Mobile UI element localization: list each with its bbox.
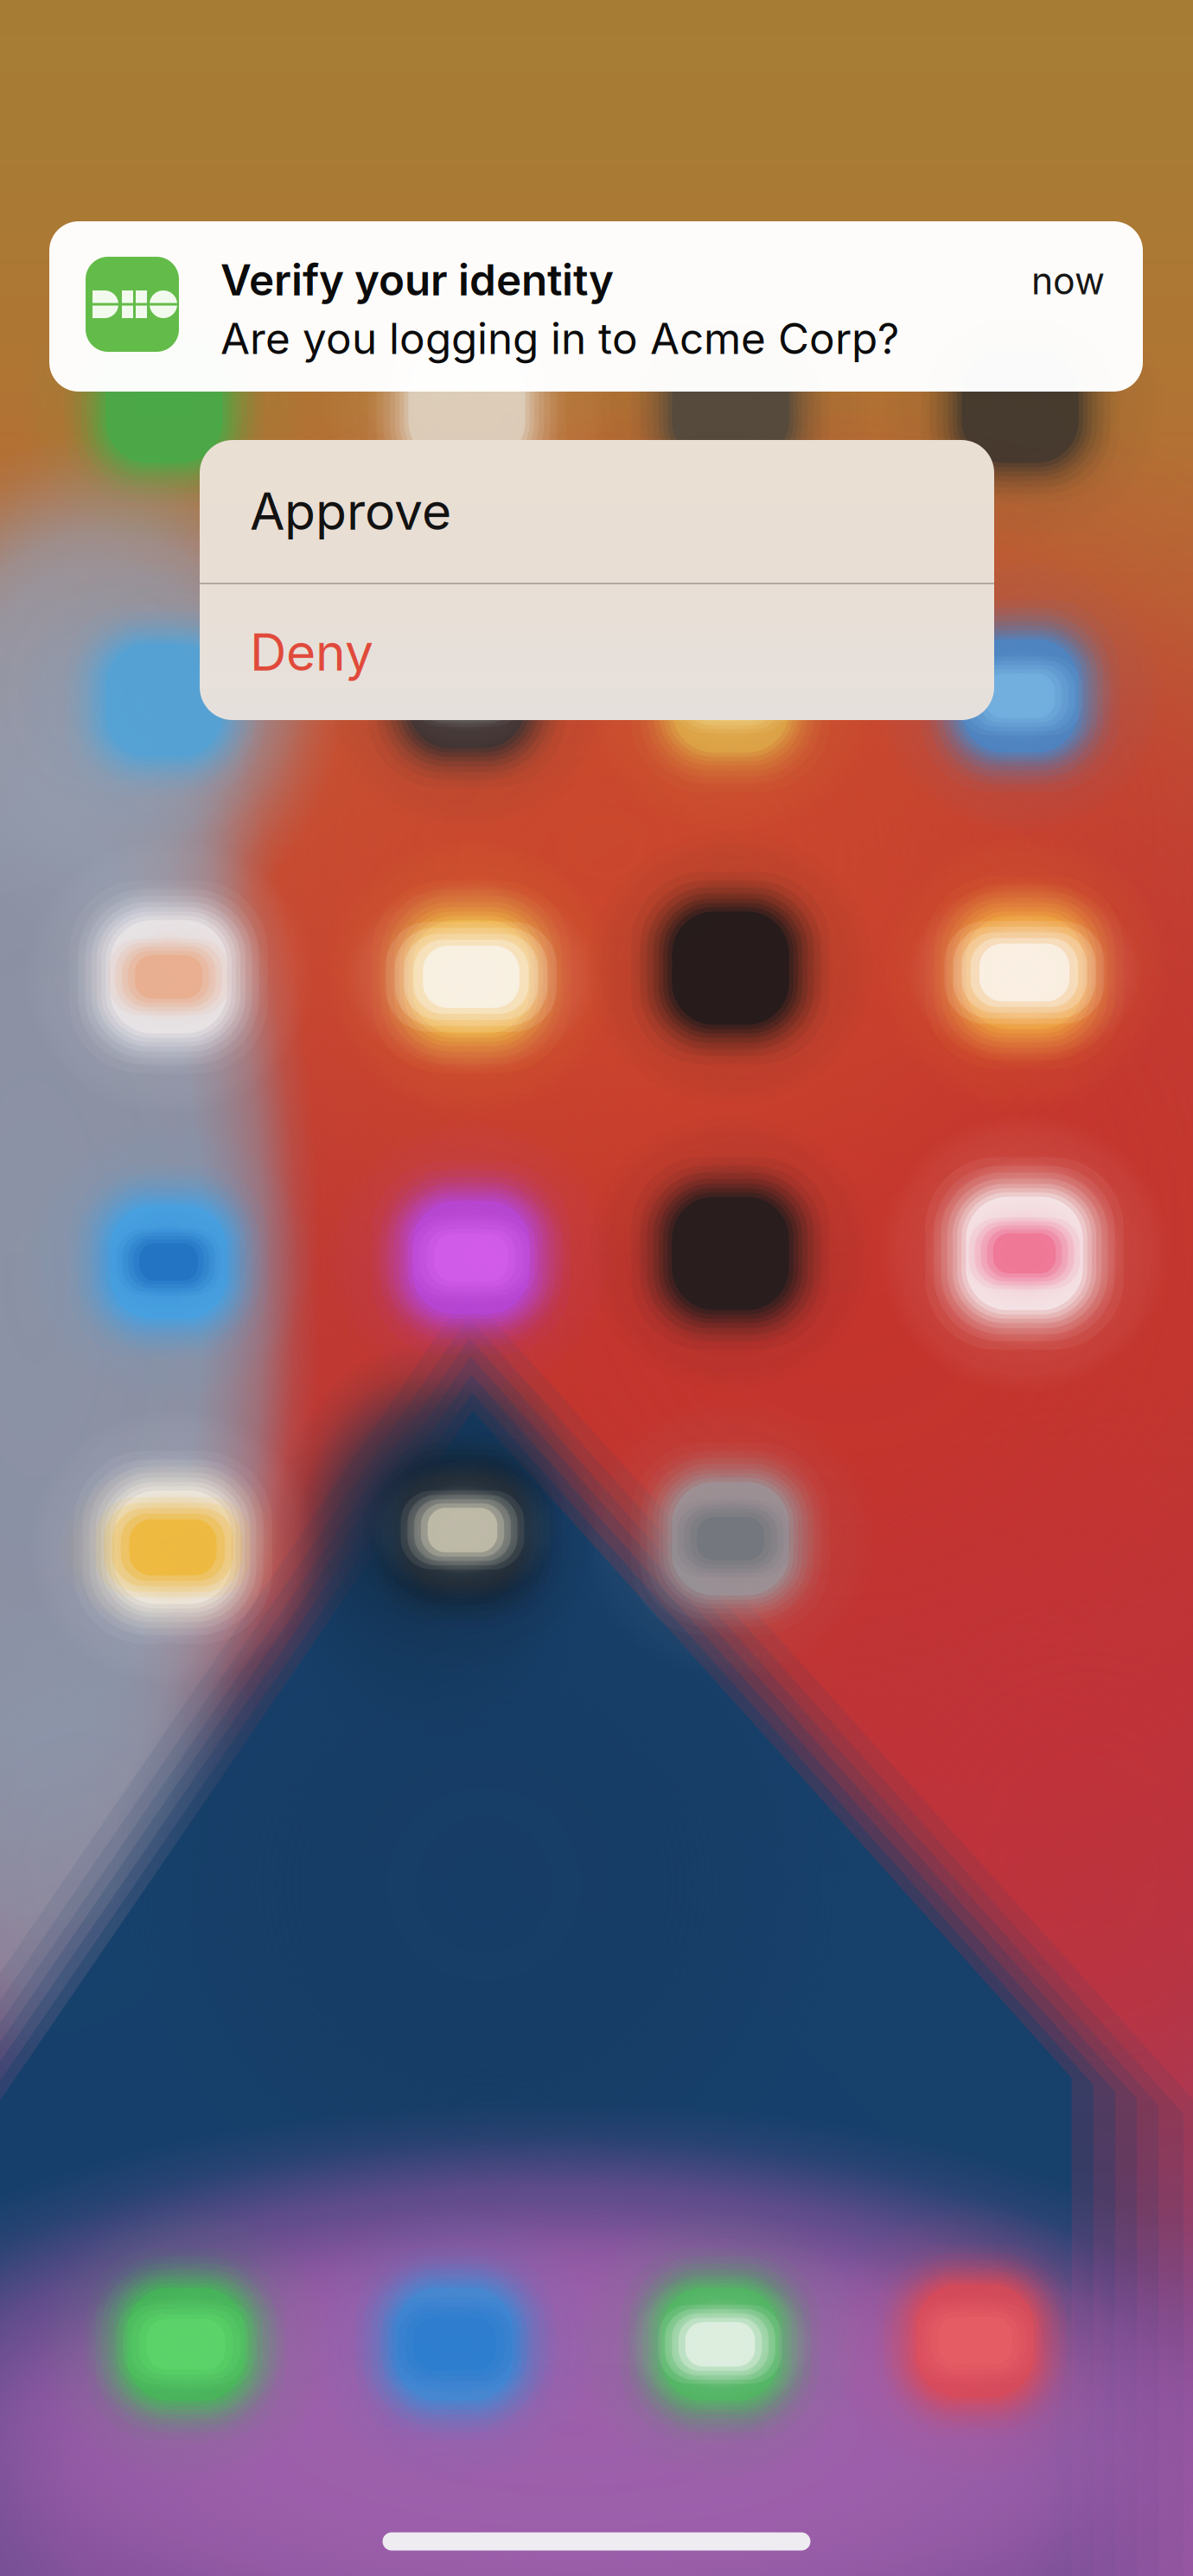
staticText: Verify your identity — [220, 254, 614, 306]
staticText: Are you logging in to Acme Corp? — [220, 313, 899, 364]
button[interactable]: Verify your identity — [49, 221, 1143, 392]
staticText: now — [1031, 259, 1105, 303]
button[interactable]: Approve — [200, 440, 994, 583]
button[interactable]: Deny — [200, 584, 994, 720]
staticText: Deny — [250, 622, 373, 683]
staticText: Approve — [250, 481, 451, 542]
